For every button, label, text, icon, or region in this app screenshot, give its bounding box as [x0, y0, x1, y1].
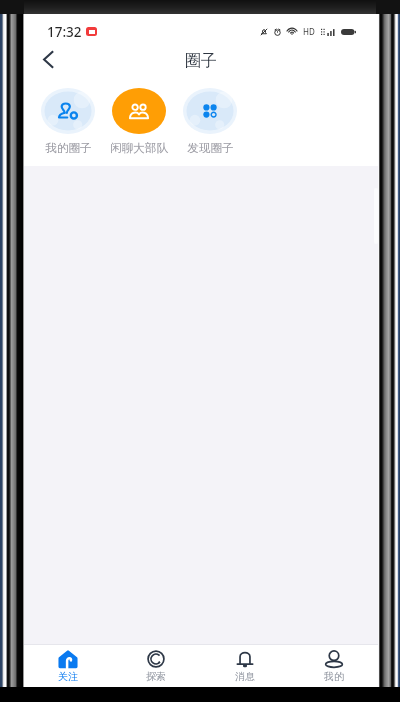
- staticText: 圈子: [185, 51, 217, 71]
- staticText: 探索: [146, 670, 166, 683]
- button[interactable]: Back: [26, 42, 70, 77]
- button[interactable]: 关注: [24, 645, 112, 687]
- staticText: 发现圈子: [187, 141, 234, 156]
- staticText: 我的圈子: [45, 141, 92, 156]
- staticText: HD: [303, 26, 315, 37]
- button[interactable]: 探索: [112, 645, 200, 687]
- staticText: 17:32: [47, 23, 82, 41]
- staticText: 消息: [235, 670, 255, 683]
- button[interactable]: 消息: [200, 645, 289, 687]
- button[interactable]: 我的圈子: [32, 80, 104, 156]
- button[interactable]: 发现圈子: [174, 80, 246, 156]
- button[interactable]: 我的: [289, 645, 378, 687]
- staticText: 关注: [58, 670, 78, 683]
- staticText: 闲聊大部队: [110, 141, 168, 156]
- button[interactable]: 闲聊大部队: [103, 80, 175, 156]
- staticText: 我的: [324, 670, 344, 683]
